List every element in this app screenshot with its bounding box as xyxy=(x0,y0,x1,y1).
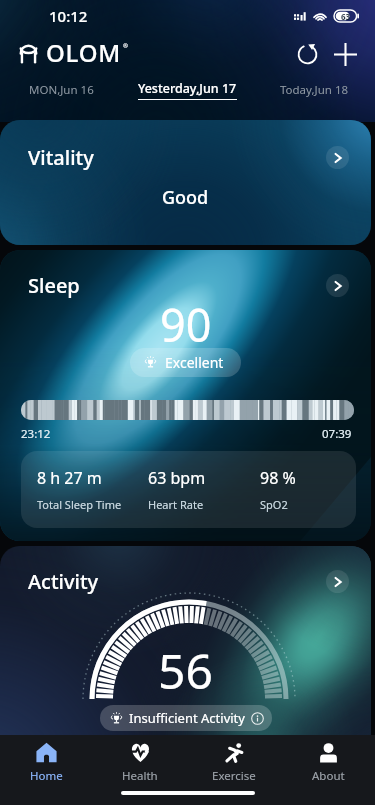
button[interactable]: Refresh xyxy=(288,35,326,73)
staticText: 8 h 27 m xyxy=(37,467,102,489)
staticText: 90 xyxy=(160,294,212,355)
button[interactable]: Open details xyxy=(326,274,349,297)
staticText: Activity xyxy=(28,568,99,595)
button[interactable]: Vitality xyxy=(0,120,371,245)
staticText: Good xyxy=(162,185,209,210)
staticText: SpO2 xyxy=(260,497,288,512)
button[interactable]: Activity xyxy=(0,546,371,776)
button[interactable]: About xyxy=(281,735,375,785)
staticText: ® xyxy=(123,42,128,50)
staticText: Home xyxy=(30,768,63,784)
staticText: Vitality xyxy=(28,144,94,171)
staticText: 10:12 xyxy=(49,6,88,26)
button[interactable]: Add xyxy=(326,35,364,73)
staticText: Heart Rate xyxy=(148,497,204,512)
button[interactable]: Open details xyxy=(326,146,349,169)
button[interactable]: Home xyxy=(0,735,93,785)
button[interactable]: Exercise xyxy=(187,735,281,785)
staticText: Yesterday,Jun 17 xyxy=(138,80,237,97)
staticText: 07:39 xyxy=(322,426,352,442)
staticText: Exercise xyxy=(212,768,256,784)
staticText: 98 % xyxy=(260,467,296,489)
staticText: Excellent xyxy=(165,353,224,372)
staticText: Today,Jun 18 xyxy=(280,82,349,98)
staticText: 56 xyxy=(158,638,213,703)
button[interactable]: Sleep xyxy=(0,250,371,541)
button[interactable]: Today,Jun 18 xyxy=(253,76,375,104)
button[interactable]: Excellent xyxy=(130,348,241,377)
staticText: 63 xyxy=(341,11,351,22)
staticText: Health xyxy=(122,768,158,784)
staticText: About xyxy=(312,768,345,784)
button[interactable]: Health xyxy=(93,735,187,785)
staticText: Total Sleep Time xyxy=(37,497,122,512)
staticText: 63 bpm xyxy=(148,467,206,489)
staticText: 23:12 xyxy=(21,426,51,442)
button[interactable]: MON,Jun 16 xyxy=(0,76,122,104)
staticText: Insufficient Activity xyxy=(129,709,245,727)
staticText: OLOM xyxy=(46,36,122,69)
button[interactable]: Open details xyxy=(326,570,349,593)
staticText: Sleep xyxy=(28,272,80,299)
button[interactable]: Insufficient Activity xyxy=(100,705,272,731)
button[interactable]: Yesterday,Jun 17 xyxy=(122,76,253,104)
staticText: MON,Jun 16 xyxy=(29,82,94,98)
